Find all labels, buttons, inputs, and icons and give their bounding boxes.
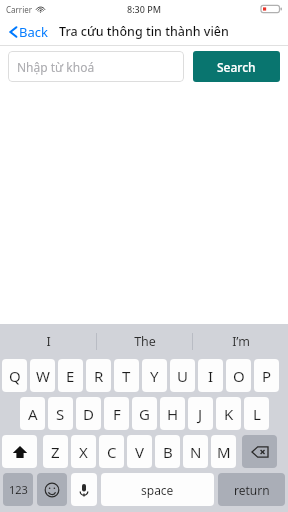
staticText: T bbox=[122, 366, 131, 386]
button[interactable]: I bbox=[0, 324, 96, 359]
button[interactable]: X bbox=[71, 435, 96, 468]
button[interactable]: W bbox=[30, 359, 55, 392]
button[interactable]: Nhập từ khoá bbox=[8, 51, 184, 82]
button[interactable]: space bbox=[101, 473, 214, 506]
button[interactable]: S bbox=[48, 397, 73, 430]
button[interactable]: Y bbox=[142, 359, 167, 392]
staticText: X bbox=[79, 442, 88, 462]
button[interactable]: P bbox=[254, 359, 279, 392]
button[interactable]: Z bbox=[43, 435, 68, 468]
button[interactable]: B bbox=[155, 435, 180, 468]
button[interactable]: Dictate bbox=[71, 473, 97, 506]
button[interactable]: R bbox=[86, 359, 111, 392]
staticText: return bbox=[234, 482, 270, 498]
staticText: Y bbox=[150, 366, 159, 386]
staticText: Q bbox=[9, 366, 21, 386]
button[interactable]: V bbox=[127, 435, 152, 468]
staticText: O bbox=[233, 366, 245, 386]
button[interactable]: D bbox=[76, 397, 101, 430]
button[interactable]: N bbox=[183, 435, 208, 468]
staticText: Tra cứu thông tin thành viên bbox=[59, 23, 229, 40]
button[interactable]: Backspace bbox=[242, 435, 277, 468]
button[interactable]: A bbox=[20, 397, 45, 430]
button[interactable]: E bbox=[58, 359, 83, 392]
staticText: U bbox=[177, 366, 188, 386]
button[interactable]: K bbox=[216, 397, 241, 430]
button[interactable]: H bbox=[160, 397, 185, 430]
button[interactable]: 123 bbox=[3, 473, 33, 506]
staticText: K bbox=[224, 404, 234, 424]
button[interactable]: U bbox=[170, 359, 195, 392]
staticText: I’m bbox=[232, 333, 250, 350]
staticText: Back bbox=[19, 23, 48, 41]
staticText: I bbox=[208, 366, 214, 386]
button[interactable]: The bbox=[97, 324, 192, 359]
staticText: I bbox=[46, 333, 51, 350]
button[interactable]: M bbox=[211, 435, 236, 468]
staticText: R bbox=[94, 366, 104, 386]
button[interactable]: J bbox=[188, 397, 213, 430]
staticText: space bbox=[141, 482, 174, 498]
button[interactable]: Q bbox=[2, 359, 27, 392]
staticText: A bbox=[28, 404, 38, 424]
staticText: B bbox=[163, 442, 173, 462]
staticText: G bbox=[139, 404, 150, 424]
staticText: V bbox=[135, 442, 145, 462]
staticText: J bbox=[198, 404, 203, 424]
staticText: C bbox=[107, 442, 117, 462]
button[interactable]: O bbox=[226, 359, 251, 392]
button[interactable]: I’m bbox=[193, 324, 288, 359]
button[interactable]: F bbox=[104, 397, 129, 430]
button[interactable]: I bbox=[198, 359, 223, 392]
staticText: Z bbox=[51, 442, 60, 462]
button[interactable]: return bbox=[218, 473, 285, 506]
staticText: H bbox=[167, 404, 179, 424]
staticText: N bbox=[190, 442, 202, 462]
button[interactable]: L bbox=[244, 397, 269, 430]
button[interactable]: C bbox=[99, 435, 124, 468]
staticText: 123 bbox=[9, 482, 28, 497]
staticText: P bbox=[262, 366, 272, 386]
button[interactable]: Emoji bbox=[37, 473, 67, 506]
staticText: W bbox=[36, 366, 50, 386]
staticText: D bbox=[83, 404, 94, 424]
button[interactable]: Search bbox=[193, 51, 280, 82]
button[interactable]: T bbox=[114, 359, 139, 392]
button[interactable]: G bbox=[132, 397, 157, 430]
staticText: Carrier bbox=[6, 4, 33, 15]
staticText: L bbox=[253, 404, 261, 424]
staticText: Search bbox=[217, 59, 256, 75]
staticText: F bbox=[113, 404, 121, 424]
staticText: Nhập từ khoá bbox=[17, 59, 95, 75]
staticText: The bbox=[134, 333, 156, 350]
staticText: 8:30 PM bbox=[127, 3, 161, 15]
staticText: E bbox=[66, 366, 75, 386]
staticText: S bbox=[56, 404, 65, 424]
button[interactable]: Shift bbox=[2, 435, 37, 468]
staticText: M bbox=[217, 442, 231, 462]
button[interactable]: Back bbox=[7, 21, 50, 43]
